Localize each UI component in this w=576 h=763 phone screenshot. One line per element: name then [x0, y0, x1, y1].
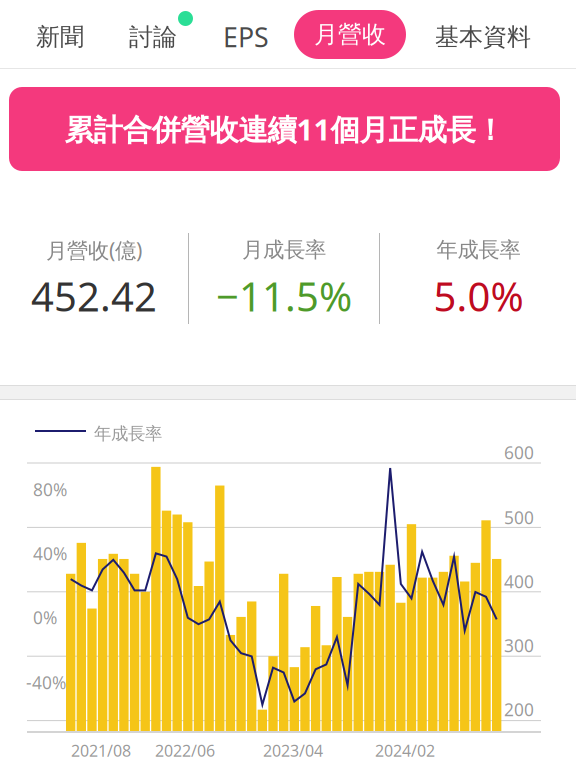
staticText: 2024/02	[375, 740, 435, 761]
staticText: 2021/08	[71, 740, 131, 761]
staticText: 452.42	[31, 269, 157, 322]
staticText: 300	[504, 634, 534, 657]
staticText: 新聞	[36, 22, 84, 52]
staticText: 2023/04	[263, 740, 323, 761]
staticText: 月營收	[314, 20, 386, 49]
staticText: EPS	[223, 19, 269, 55]
staticText: 基本資料	[435, 22, 531, 52]
staticText: −11.5%	[216, 269, 352, 322]
staticText: -40%	[26, 671, 66, 694]
staticText: 0%	[33, 606, 57, 629]
button[interactable]: 基本資料	[428, 3, 538, 71]
staticText: 500	[504, 506, 534, 529]
button[interactable]: EPS	[206, 3, 286, 71]
staticText: 月成長率	[242, 237, 326, 263]
staticText: 累計合併營收連續11個月正成長！	[64, 109, 504, 148]
staticText: 年成長率	[436, 237, 520, 263]
staticText: 2022/06	[155, 740, 215, 761]
staticText: 200	[504, 698, 534, 721]
staticText: 討論	[129, 22, 177, 52]
staticText: 80%	[33, 478, 67, 501]
staticText: 月營收(億)	[46, 236, 142, 264]
staticText: 600	[504, 441, 534, 464]
button[interactable]: 討論	[113, 3, 193, 71]
staticText: 年成長率	[94, 423, 162, 444]
button[interactable]: 新聞	[20, 3, 100, 71]
staticText: 400	[504, 570, 534, 593]
button[interactable]: 月營收	[294, 10, 406, 59]
staticText: 5.0%	[433, 269, 523, 322]
staticText: 40%	[33, 542, 67, 565]
